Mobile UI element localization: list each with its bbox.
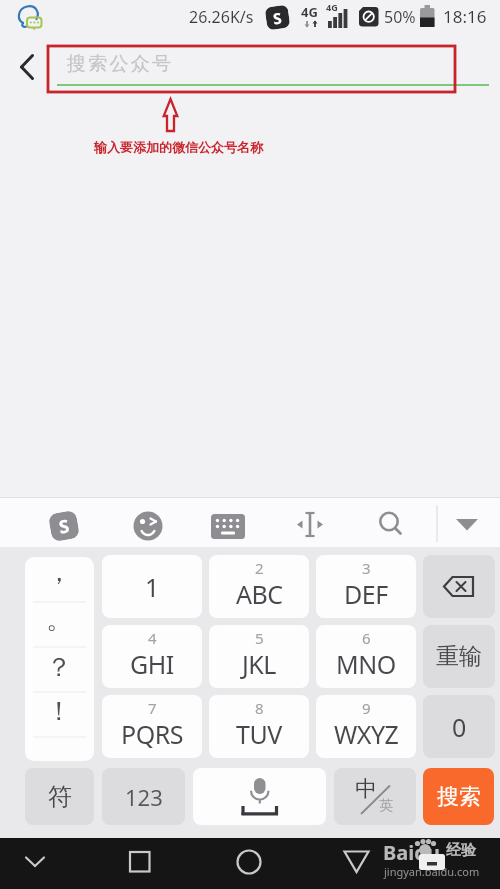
staticText: WXYZ xyxy=(334,717,399,751)
staticText: 6 xyxy=(362,628,371,648)
staticText: ， xyxy=(46,556,72,589)
button[interactable]: 2 xyxy=(209,555,309,618)
staticText: S xyxy=(272,7,283,29)
staticText: 输入要添加的微信公众号名称 xyxy=(94,139,263,155)
staticText: 50% xyxy=(384,6,416,28)
button[interactable]: 搜索 xyxy=(423,768,494,825)
staticText: 7 xyxy=(148,698,157,718)
button[interactable] xyxy=(423,555,495,618)
staticText: 重输 xyxy=(436,642,482,671)
staticText: 2 xyxy=(255,558,264,578)
staticText: 4 xyxy=(148,628,157,648)
staticText: 搜索公众号 xyxy=(66,52,172,76)
button[interactable]: 符 xyxy=(25,768,94,825)
staticText: 1 xyxy=(145,570,160,604)
button[interactable]: 0 xyxy=(423,695,495,758)
staticText: 中 xyxy=(355,775,377,803)
staticText: 123 xyxy=(125,782,163,812)
staticText: DEF xyxy=(344,577,388,611)
button[interactable]: 123 xyxy=(102,768,185,825)
button[interactable]: 重输 xyxy=(423,625,495,688)
button[interactable]: 5 xyxy=(209,625,309,688)
staticText: JKL xyxy=(242,647,276,681)
staticText: 4G xyxy=(326,1,338,13)
staticText: MNO xyxy=(336,647,396,681)
button[interactable]: 3 xyxy=(316,555,416,618)
staticText: 3 xyxy=(362,558,371,578)
staticText: Baidu xyxy=(383,839,440,866)
staticText: 8 xyxy=(255,698,264,718)
button[interactable]: 9 xyxy=(316,695,416,758)
staticText: ABC xyxy=(236,577,283,611)
staticText: 0 xyxy=(452,710,467,744)
staticText: PQRS xyxy=(121,717,183,751)
button[interactable]: 7 xyxy=(102,695,202,758)
staticText: 。 xyxy=(46,603,72,636)
staticText: 搜索 xyxy=(437,783,481,811)
staticText: GHI xyxy=(130,647,174,681)
button[interactable]: 8 xyxy=(209,695,309,758)
staticText: 5 xyxy=(255,628,264,648)
staticText: ？ xyxy=(46,651,72,684)
button[interactable]: 4 xyxy=(102,625,202,688)
button[interactable]: 6 xyxy=(316,625,416,688)
staticText: S xyxy=(57,513,71,540)
staticText: 26.26K/s xyxy=(189,6,254,28)
staticText: 符 xyxy=(48,782,72,812)
staticText: ！ xyxy=(46,695,72,728)
staticText: 4G xyxy=(301,3,318,21)
button[interactable] xyxy=(334,768,416,825)
staticText: 经验 xyxy=(446,841,476,860)
staticText: jingyan.baidu.com xyxy=(384,864,480,879)
button[interactable] xyxy=(25,557,94,761)
staticText: 18:16 xyxy=(443,5,487,28)
staticText: 9 xyxy=(362,698,371,718)
staticText: 英 xyxy=(379,797,393,815)
button[interactable] xyxy=(193,768,326,825)
button[interactable]: S xyxy=(48,510,80,542)
staticText: TUV xyxy=(236,717,282,751)
button[interactable]: 1 xyxy=(102,555,202,618)
